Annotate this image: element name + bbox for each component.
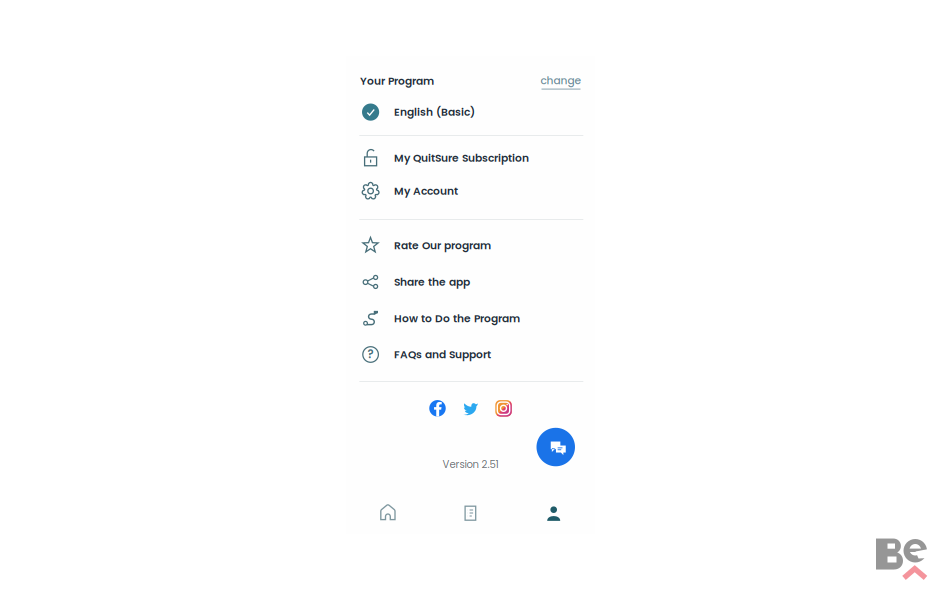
- staticText: FAQs and Support: [394, 347, 491, 362]
- button[interactable]: Rate Our program: [362, 230, 584, 260]
- staticText: ?: [368, 346, 374, 362]
- staticText: English (Basic): [394, 105, 475, 119]
- button[interactable]: Twitter: [462, 400, 479, 417]
- button[interactable]: Share the app: [362, 267, 584, 297]
- button[interactable]: My QuitSure Subscription: [362, 143, 584, 173]
- button[interactable]: How to Do the Program: [362, 303, 584, 333]
- button[interactable]: ?: [362, 339, 584, 369]
- button[interactable]: My Account: [362, 176, 584, 206]
- button[interactable]: Instagram: [495, 400, 512, 417]
- button[interactable]: Your Program: [360, 73, 450, 89]
- staticText: Your Program: [360, 73, 434, 88]
- staticText: My Account: [394, 183, 458, 198]
- staticText: Share the app: [394, 274, 470, 289]
- button[interactable]: Profile: [536, 498, 572, 528]
- staticText: How to Do the Program: [394, 311, 520, 326]
- button[interactable]: Chat with support: [536, 428, 575, 466]
- button[interactable]: change: [539, 73, 583, 89]
- staticText: Version 2.51: [442, 457, 498, 472]
- staticText: change: [540, 73, 581, 88]
- button[interactable]: Home: [370, 497, 406, 527]
- button[interactable]: English (Basic): [362, 97, 584, 127]
- staticText: Rate Our program: [394, 238, 491, 253]
- button[interactable]: Program: [452, 498, 488, 528]
- button[interactable]: Facebook: [429, 400, 446, 417]
- staticText: My QuitSure Subscription: [394, 150, 529, 165]
